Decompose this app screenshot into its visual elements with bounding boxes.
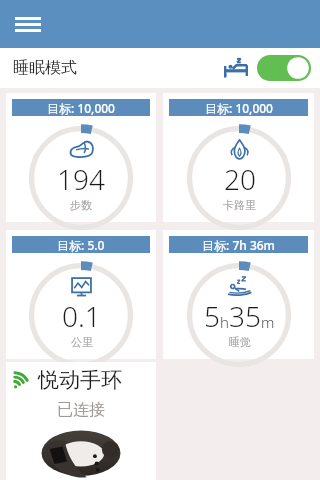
staticText: 公里 [71, 335, 93, 349]
staticText: 35 [229, 297, 261, 335]
button[interactable]: 睡眠模式 [0, 48, 320, 88]
staticText: 0.1 [62, 297, 101, 335]
staticText: 20 [224, 160, 256, 198]
staticText: 睡觉 [229, 335, 251, 349]
staticText: 卡路里 [223, 198, 256, 212]
button[interactable]: Sleep mode toggle [257, 55, 311, 81]
staticText: 目标: 10,000 [205, 100, 273, 116]
button[interactable]: 目标: 5.0 [6, 230, 156, 359]
button[interactable]: Menu [8, 4, 48, 44]
button[interactable]: 目标: 10,000 [6, 93, 156, 222]
staticText: 悦动手环 [38, 367, 122, 393]
staticText: 194 [57, 160, 105, 198]
button[interactable]: 目标: 10,000 [163, 93, 314, 222]
staticText: 目标: 5.0 [57, 237, 105, 253]
staticText: 目标: 10,000 [47, 100, 115, 116]
button[interactable]: 悦动手环 [6, 362, 156, 480]
staticText: m [261, 312, 275, 332]
other: Sleep [224, 58, 248, 78]
button[interactable]: 目标: 7h 36m [163, 230, 314, 359]
staticText: 5 [204, 297, 220, 335]
staticText: h [220, 312, 229, 332]
staticText: 步数 [70, 198, 92, 212]
staticText: 目标: 7h 36m [202, 237, 275, 253]
staticText: 睡眠模式 [13, 58, 77, 78]
staticText: 已连接 [57, 400, 105, 420]
